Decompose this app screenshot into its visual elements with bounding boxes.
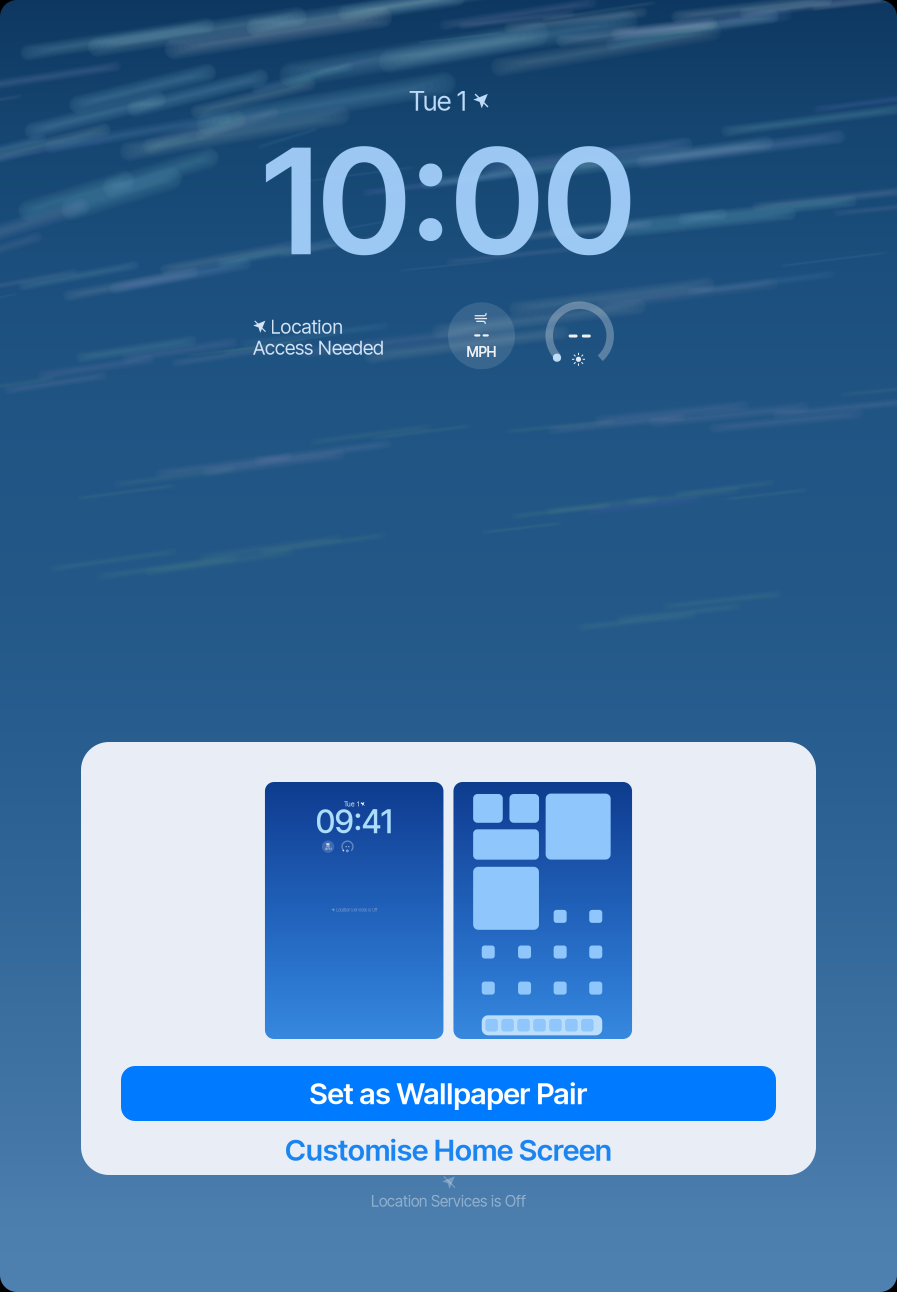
staticText: Tue 1 [344,800,359,808]
staticText: Customise Home Screen [285,1132,612,1168]
staticText: Set as Wallpaper Pair [309,1076,587,1111]
staticText: MPH [324,847,331,851]
staticText: 09:41 [316,802,393,841]
staticText: Tue 1 [409,85,466,117]
button[interactable]: Set as Wallpaper Pair [121,1066,776,1121]
staticText: 10:00 [262,112,635,290]
button[interactable]: Customise Home Screen [121,1127,776,1173]
staticText: MPH [466,343,496,360]
button[interactable]: Home Screen preview [453,782,632,1039]
staticText: Location Services is Off [336,907,377,913]
button[interactable]: Lock Screen preview [265,782,443,1039]
staticText: Location Services is Off [371,1192,526,1211]
staticText: Location [270,315,342,338]
staticText: Access Needed [253,336,384,359]
